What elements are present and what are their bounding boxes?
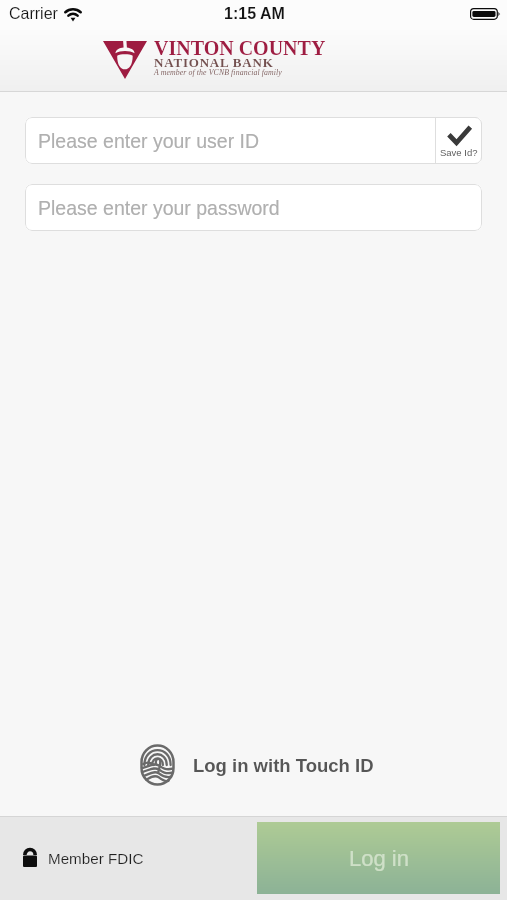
button[interactable]: Please enter your password <box>25 184 482 231</box>
button[interactable]: Save Id <box>435 117 482 164</box>
staticText: A member of the VCNB financial family <box>154 68 282 77</box>
button[interactable]: Member FDIC <box>23 849 144 867</box>
button[interactable]: Log in <box>257 822 500 894</box>
staticText: NATIONAL BANK <box>154 55 274 69</box>
staticText: Please enter your password <box>38 197 280 219</box>
staticText: VINTON COUNTY <box>154 37 326 59</box>
button[interactable]: Please enter your user ID <box>25 117 482 164</box>
staticText: Please enter your user ID <box>38 130 435 152</box>
staticText: Log in with Touch ID <box>193 755 374 776</box>
staticText: Save Id? <box>440 147 478 158</box>
staticText: Log in <box>349 846 409 871</box>
button[interactable]: Log in with Touch ID <box>3 728 507 802</box>
staticText: 1:15 AM <box>224 5 285 23</box>
staticText: Member FDIC <box>48 850 144 867</box>
staticText: Carrier <box>9 5 58 23</box>
